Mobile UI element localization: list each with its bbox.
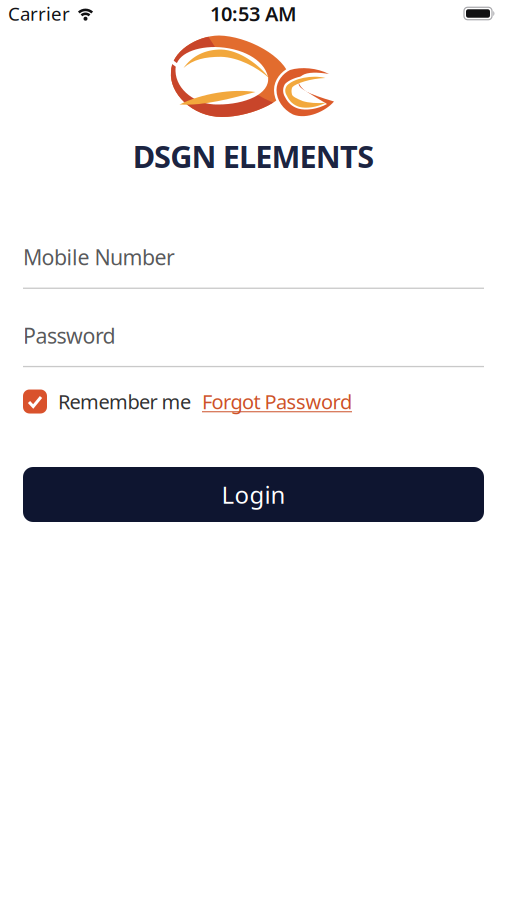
button[interactable]: Remember me [23, 388, 191, 415]
staticText: Password [23, 321, 115, 349]
staticText: Forgot Password [202, 388, 352, 415]
button[interactable]: Login [23, 467, 484, 522]
button[interactable]: Password [23, 321, 484, 367]
staticText: DSGN ELEMENTS [133, 136, 374, 176]
button[interactable]: Forgot Password [202, 388, 352, 415]
staticText: Carrier [8, 1, 70, 26]
staticText: 10:53 AM [210, 0, 297, 27]
staticText: Login [221, 479, 285, 510]
staticText: Mobile Number [23, 243, 175, 271]
staticText: Remember me [58, 388, 191, 415]
button[interactable]: Mobile Number [23, 243, 484, 289]
